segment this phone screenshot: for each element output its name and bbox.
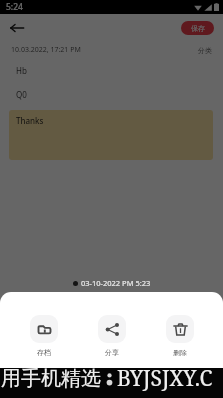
- staticText: 5:24: [6, 1, 23, 13]
- staticText: 分享: [105, 348, 119, 357]
- button[interactable]: 保存: [181, 21, 214, 35]
- button[interactable]: Back: [5, 16, 29, 40]
- button[interactable]: 删除: [166, 315, 194, 357]
- staticText: BYJSJXY.COM: [117, 364, 223, 393]
- button[interactable]: 存档: [30, 315, 58, 357]
- staticText: 03-10-2022 PM 5:23: [81, 278, 151, 288]
- button[interactable]: 分类: [192, 46, 223, 55]
- staticText: 用手机精选: [1, 366, 101, 391]
- staticText: 分类: [198, 46, 212, 55]
- staticText: Thanks: [16, 115, 44, 126]
- button[interactable]: Thanks: [9, 110, 213, 160]
- staticText: Hb: [16, 65, 27, 76]
- staticText: 10.03.2022, 17:21 PM: [11, 45, 81, 55]
- staticText: 保存: [191, 24, 205, 33]
- staticText: 删除: [173, 348, 187, 357]
- staticText: 存档: [37, 348, 51, 357]
- button[interactable]: 分享: [98, 315, 126, 357]
- staticText: Q0: [16, 89, 27, 100]
